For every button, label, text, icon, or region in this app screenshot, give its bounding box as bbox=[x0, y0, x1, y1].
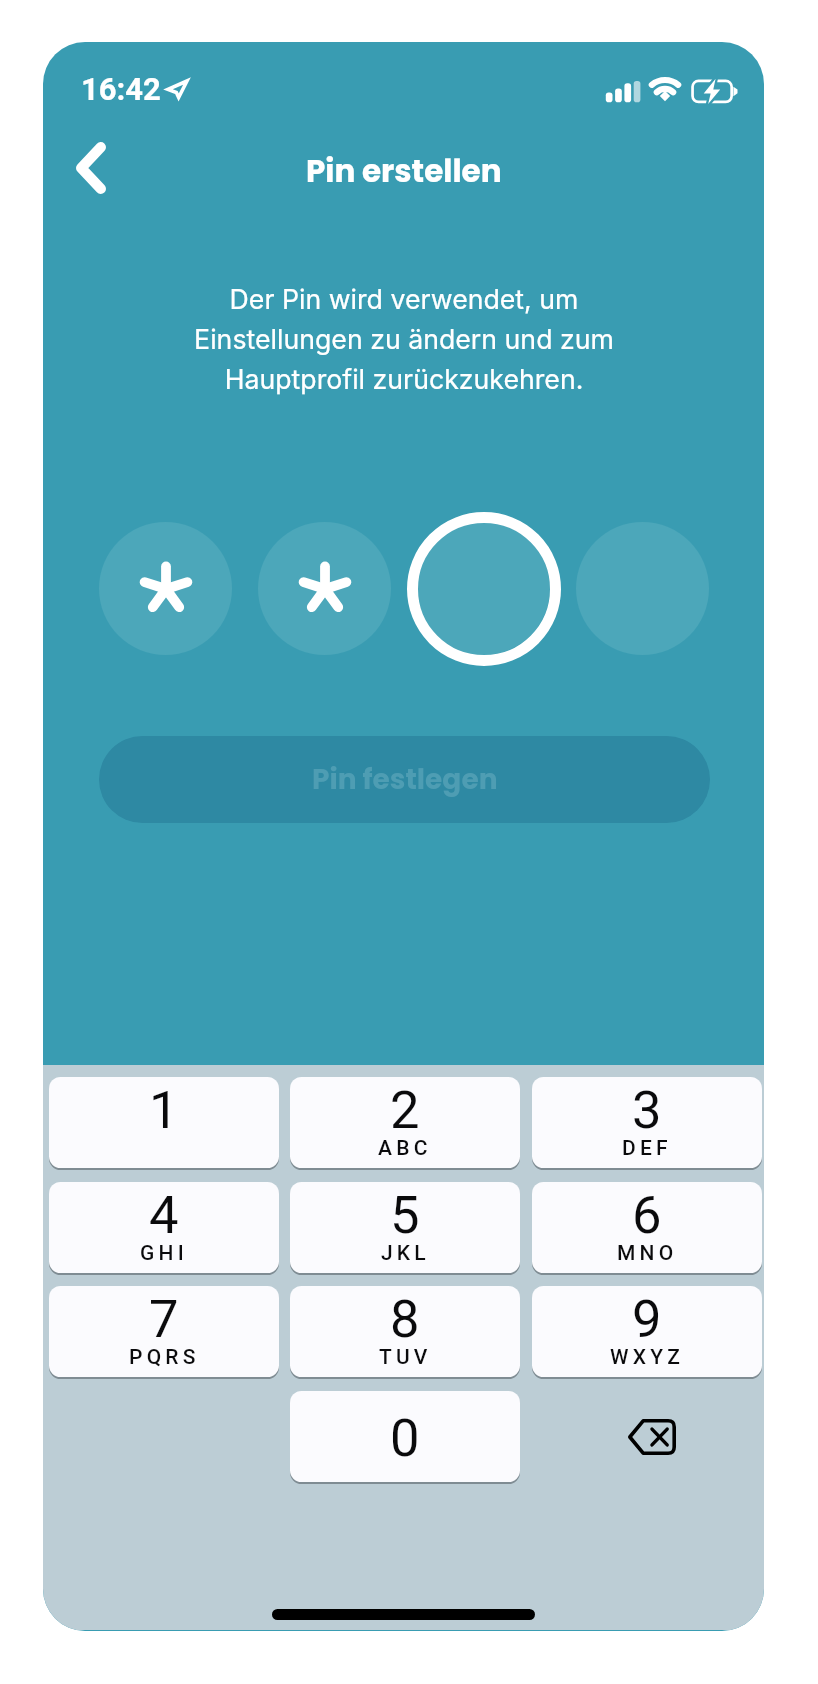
button[interactable]: 4 bbox=[49, 1182, 279, 1273]
staticText: Pin festlegen bbox=[312, 760, 498, 799]
staticText: PQRS bbox=[129, 1345, 200, 1370]
staticText: Pin erstellen bbox=[306, 149, 502, 192]
staticText: DEF bbox=[622, 1136, 672, 1161]
button[interactable]: 0 bbox=[290, 1391, 520, 1482]
button[interactable]: 8 bbox=[290, 1286, 520, 1377]
staticText: GHI bbox=[140, 1241, 188, 1266]
staticText: TUV bbox=[379, 1345, 432, 1370]
staticText: WXYZ bbox=[610, 1345, 685, 1370]
staticText: 0 bbox=[390, 1407, 420, 1469]
button[interactable]: Pin festlegen bbox=[99, 736, 710, 823]
staticText: 9 bbox=[632, 1288, 662, 1350]
staticText: 6 bbox=[632, 1184, 662, 1246]
button[interactable]: 7 bbox=[49, 1286, 279, 1377]
button[interactable]: 2 bbox=[290, 1077, 520, 1168]
button[interactable]: 3 bbox=[532, 1077, 762, 1168]
staticText: 2 bbox=[390, 1079, 420, 1141]
staticText: 1 bbox=[149, 1079, 179, 1141]
staticText: 4 bbox=[149, 1184, 179, 1246]
staticText: ABC bbox=[378, 1136, 432, 1161]
button[interactable]: 5 bbox=[290, 1182, 520, 1273]
button[interactable]: 6 bbox=[532, 1182, 762, 1273]
staticText: JKL bbox=[381, 1241, 430, 1266]
staticText: 5 bbox=[390, 1184, 420, 1246]
staticText: 8 bbox=[390, 1288, 420, 1350]
button[interactable]: 1 bbox=[49, 1077, 279, 1168]
staticText: 7 bbox=[149, 1288, 179, 1350]
staticText: 16:42 bbox=[81, 71, 161, 107]
staticText: MNO bbox=[617, 1241, 678, 1266]
button[interactable]: 9 bbox=[532, 1286, 762, 1377]
staticText: 3 bbox=[632, 1079, 662, 1141]
button[interactable]: Backspace bbox=[593, 1379, 709, 1495]
staticText: Der Pin wird verwendet, um Einstellungen… bbox=[194, 283, 614, 396]
button[interactable]: Back bbox=[60, 137, 122, 199]
